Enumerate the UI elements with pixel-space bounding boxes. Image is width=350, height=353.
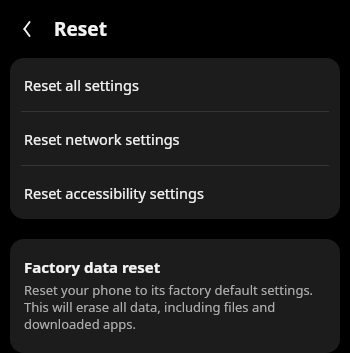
staticText: Reset all settings: [24, 75, 139, 95]
button[interactable]: Reset all settings: [10, 58, 340, 111]
button[interactable]: Reset network settings: [10, 112, 340, 165]
staticText: Factory data reset: [24, 257, 161, 277]
staticText: Reset accessibility settings: [24, 183, 204, 203]
button[interactable]: Back: [13, 14, 43, 44]
button[interactable]: Factory data reset: [10, 239, 340, 353]
button[interactable]: Reset accessibility settings: [10, 166, 340, 219]
staticText: Reset: [54, 16, 107, 42]
staticText: Reset network settings: [24, 129, 180, 149]
staticText: Reset your phone to its factory default …: [24, 281, 326, 333]
